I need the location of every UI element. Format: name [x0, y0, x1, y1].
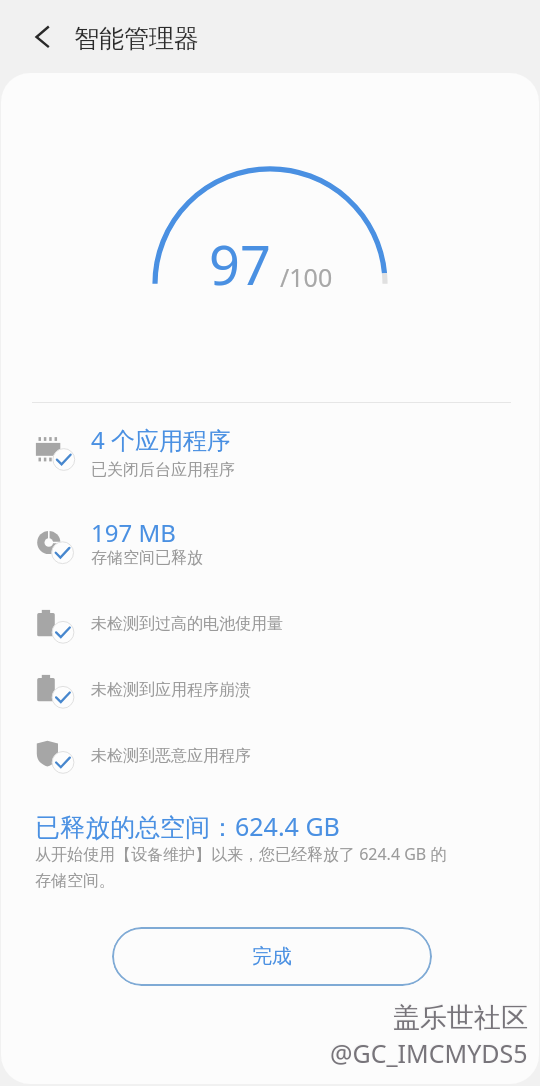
- staticText: 未检测到应用程序崩溃: [91, 680, 251, 700]
- button[interactable]: 完成: [112, 927, 432, 986]
- button[interactable]: 未检测到应用程序崩溃: [1, 656, 539, 722]
- staticText: /100: [280, 260, 333, 294]
- staticText: 盖乐世社区: [393, 1001, 528, 1035]
- button[interactable]: 未检测到恶意应用程序: [1, 722, 539, 788]
- staticText: 197 MB: [91, 516, 176, 549]
- button[interactable]: 未检测到过高的电池使用量: [1, 591, 539, 657]
- staticText: 已释放的总空间：624.4 GB: [35, 809, 340, 843]
- staticText: @GC_IMCMYDS5: [330, 1036, 528, 1070]
- staticText: 未检测到过高的电池使用量: [91, 614, 283, 634]
- staticText: 未检测到恶意应用程序: [91, 746, 251, 766]
- staticText: 存储空间已释放: [91, 548, 203, 568]
- button[interactable]: 4 个应用程序: [1, 420, 539, 486]
- staticText: @GC_IMCMYDS5: [329, 1035, 527, 1069]
- staticText: 4 个应用程序: [91, 423, 231, 456]
- button[interactable]: 197 MB: [1, 512, 539, 578]
- staticText: 智能管理器: [74, 23, 199, 54]
- staticText: 完成: [252, 944, 292, 969]
- staticText: 已关闭后台应用程序: [91, 460, 235, 480]
- staticText: 盖乐世社区: [392, 1000, 527, 1034]
- staticText: 97: [209, 227, 271, 301]
- button[interactable]: Back: [13, 9, 70, 66]
- staticText: 从开始使用【设备维护】以来，您已经释放了 624.4 GB 的 存储空间。: [35, 843, 525, 891]
